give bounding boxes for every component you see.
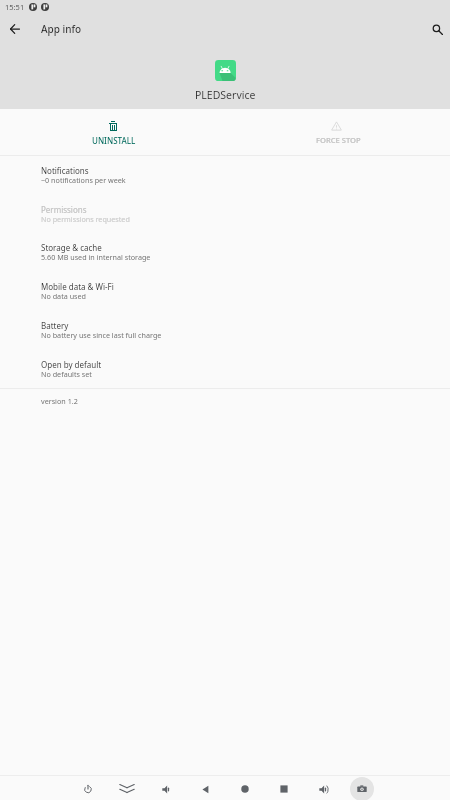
- staticText: No data used: [41, 291, 86, 301]
- button[interactable]: Home: [234, 778, 256, 800]
- staticText: No battery use since last full charge: [41, 330, 162, 340]
- button[interactable]: Uninstall: [0, 109, 225, 155]
- button[interactable]: Volume up: [312, 778, 334, 800]
- button[interactable]: Volume down: [155, 778, 177, 800]
- button[interactable]: Search: [425, 17, 449, 41]
- button[interactable]: Power: [77, 778, 99, 800]
- button[interactable]: Notifications: [0, 159, 450, 198]
- button[interactable]: Camera: [350, 777, 374, 800]
- button[interactable]: Mobile data & Wi-Fi: [0, 275, 450, 314]
- button[interactable]: Collapse: [116, 778, 138, 800]
- button[interactable]: Back: [194, 778, 216, 800]
- staticText: No permissions requested: [41, 214, 130, 224]
- staticText: Permissions: [41, 204, 87, 215]
- staticText: 5.60 MB used in internal storage: [41, 252, 151, 262]
- staticText: version 1.2: [41, 396, 78, 406]
- staticText: Storage & cache: [41, 242, 102, 253]
- button[interactable]: Storage & cache: [0, 236, 450, 275]
- staticText: UNINSTALL: [92, 135, 136, 146]
- staticText: 15:51: [5, 2, 25, 12]
- staticText: PLEDService: [195, 88, 256, 102]
- staticText: No defaults set: [41, 369, 92, 379]
- staticText: FORCE STOP: [316, 135, 361, 145]
- staticText: Mobile data & Wi-Fi: [41, 281, 114, 292]
- staticText: App info: [41, 22, 82, 36]
- button[interactable]: Recents: [273, 778, 295, 800]
- button[interactable]: Back: [3, 17, 27, 41]
- staticText: ~0 notifications per week: [41, 175, 126, 185]
- button[interactable]: Battery: [0, 314, 450, 353]
- staticText: Battery: [41, 320, 69, 331]
- staticText: Notifications: [41, 165, 89, 176]
- button[interactable]: Open by default: [0, 353, 450, 392]
- staticText: Open by default: [41, 359, 102, 370]
